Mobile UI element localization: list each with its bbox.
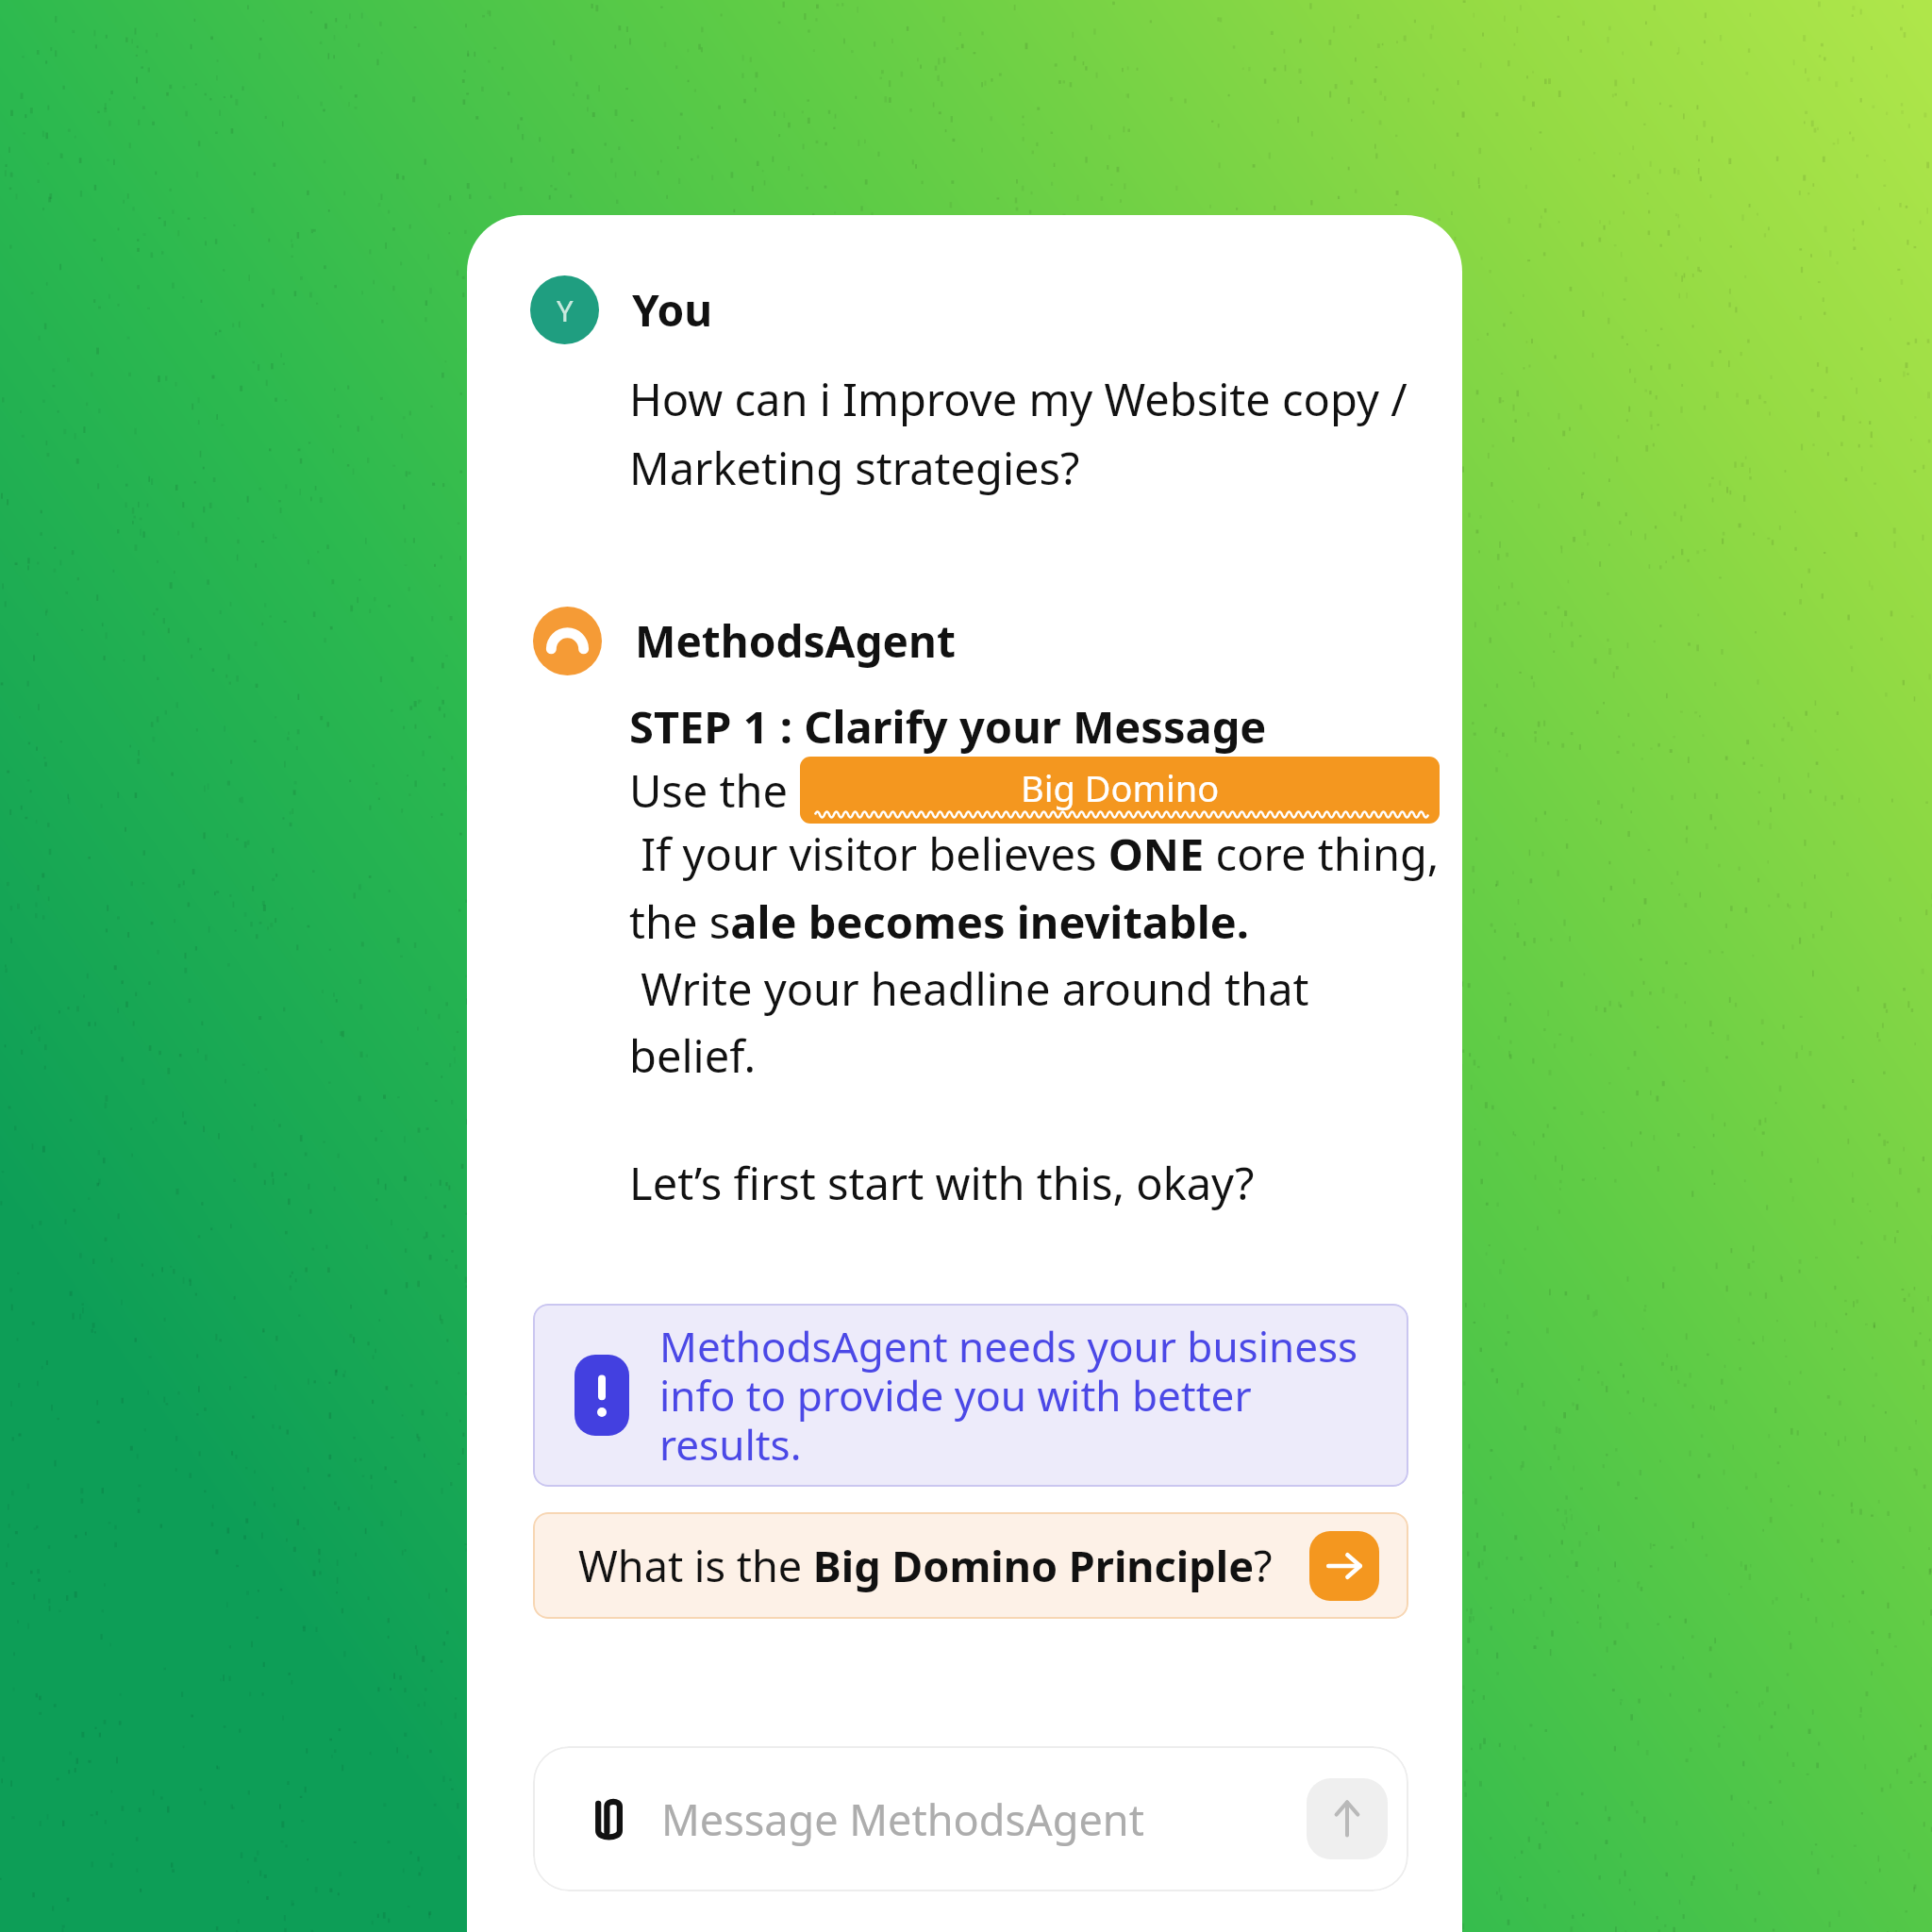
button[interactable]: Attach file xyxy=(582,1792,635,1845)
staticText: Message MethodsAgent xyxy=(661,1790,1307,1848)
staticText: You xyxy=(632,280,713,340)
staticText: How can i Improve my Website copy / Mark… xyxy=(629,369,1407,497)
button[interactable]: Send xyxy=(1307,1778,1388,1859)
staticText: Use the xyxy=(629,760,800,821)
button[interactable]: Big Domino xyxy=(815,763,1424,817)
button[interactable]: MethodsAgent needs your business info to… xyxy=(533,1304,1408,1487)
button[interactable]: Ask Big Domino Principle xyxy=(1309,1531,1379,1601)
button[interactable]: What is the Big Domino Principle? xyxy=(533,1512,1408,1619)
button[interactable]: Attach file xyxy=(533,1746,1408,1891)
staticText: What is the Big Domino Principle? xyxy=(578,1537,1309,1594)
staticText: Big Domino xyxy=(1021,763,1220,812)
staticText: MethodsAgent needs your business info to… xyxy=(659,1318,1358,1473)
staticText: MethodsAgent xyxy=(635,611,956,671)
staticText: STEP 1 : Clarify your Message xyxy=(629,696,1267,757)
staticText: If your visitor believes ONE core thing,… xyxy=(629,824,1440,1085)
staticText: Y xyxy=(557,291,574,330)
staticText: Let’s first start with this, okay? xyxy=(629,1153,1255,1213)
